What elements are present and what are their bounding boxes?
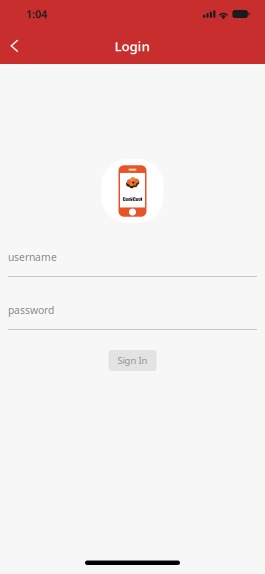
staticText: username [8, 250, 57, 264]
staticText: 1:04 [26, 7, 47, 21]
staticText: Sign In [117, 354, 147, 367]
button[interactable]: password [8, 308, 257, 330]
button[interactable]: Sign In [108, 350, 156, 371]
staticText: password [8, 303, 54, 317]
button[interactable]: Back [0, 29, 28, 63]
staticText: Login [114, 37, 150, 55]
button[interactable]: username [8, 255, 257, 277]
